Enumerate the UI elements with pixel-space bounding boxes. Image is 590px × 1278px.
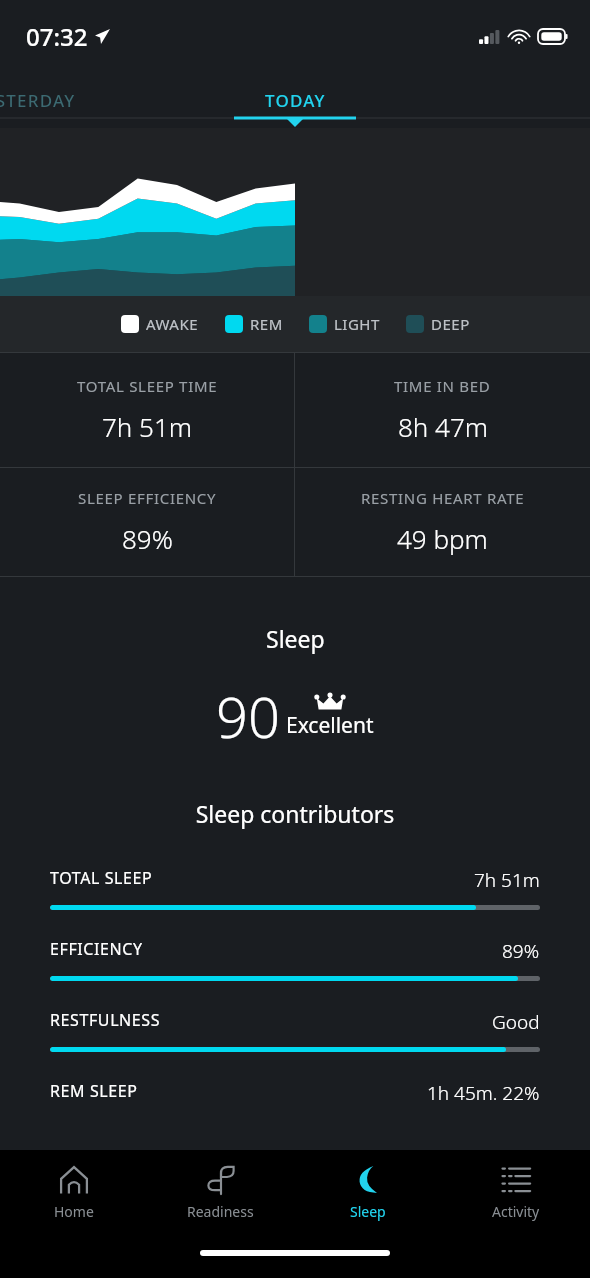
staticText: Excellent [286, 711, 374, 740]
button[interactable]: TOTAL SLEEP TIME [0, 353, 294, 467]
staticText: 49 bpm [397, 521, 488, 556]
staticText: YESTERDAY [0, 89, 76, 112]
button[interactable]: SLEEP EFFICIENCY [0, 468, 294, 576]
staticText: Sleep contributors [0, 798, 590, 829]
staticText: TIME IN BED [394, 376, 491, 396]
staticText: Good [492, 1009, 540, 1035]
staticText: Activity [492, 1202, 540, 1221]
staticText: 7h 51m [474, 867, 540, 893]
button[interactable]: RESTING HEART RATE [295, 468, 590, 576]
button[interactable]: TODAY [247, 81, 344, 120]
staticText: 90 [216, 678, 280, 754]
staticText: REM SLEEP [50, 1080, 138, 1102]
staticText: RESTFULNESS [50, 1009, 161, 1031]
staticText: 89% [122, 521, 173, 556]
button[interactable]: Activity [442, 1150, 590, 1236]
staticText: 7h 51m [102, 409, 192, 444]
button[interactable]: Home [0, 1150, 147, 1236]
button[interactable]: Readiness [147, 1150, 294, 1236]
staticText: Home [54, 1202, 94, 1221]
button[interactable]: TIME IN BED [295, 353, 590, 467]
staticText: DEEP [431, 314, 470, 334]
staticText: RESTING HEART RATE [361, 488, 525, 508]
staticText: SLEEP EFFICIENCY [78, 488, 217, 508]
staticText: TOTAL SLEEP TIME [77, 376, 218, 396]
button[interactable]: EFFICIENCY [0, 938, 590, 1009]
button[interactable]: Sleep [294, 1150, 442, 1236]
staticText: EFFICIENCY [50, 938, 143, 960]
staticText: Sleep [350, 1202, 386, 1221]
staticText: 89% [502, 938, 540, 964]
staticText: Sleep [266, 623, 325, 654]
staticText: 07:32 [26, 20, 88, 53]
button[interactable]: REM SLEEP [0, 1080, 590, 1106]
staticText: Readiness [187, 1202, 254, 1221]
staticText: LIGHT [334, 314, 380, 334]
button[interactable]: RESTFULNESS [0, 1009, 590, 1080]
staticText: AWAKE [146, 314, 199, 334]
staticText: TOTAL SLEEP [50, 867, 153, 889]
staticText: 1h 45m. 22% [427, 1080, 540, 1106]
staticText: TODAY [265, 89, 326, 112]
button[interactable]: TOTAL SLEEP [0, 867, 590, 938]
button[interactable]: YESTERDAY [0, 81, 90, 120]
staticText: REM [250, 314, 283, 334]
staticText: 8h 47m [398, 409, 488, 444]
